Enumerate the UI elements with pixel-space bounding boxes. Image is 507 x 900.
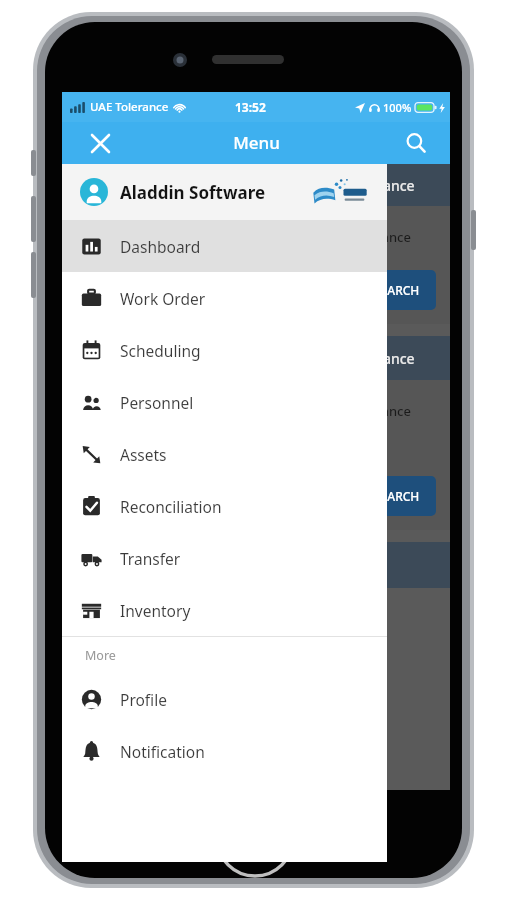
button[interactable]: Profile [62, 673, 387, 725]
staticText: Notification [120, 741, 205, 762]
button[interactable]: Notification [62, 725, 387, 777]
staticText: Balance [362, 176, 415, 195]
button[interactable]: Search [394, 122, 438, 164]
button[interactable]: SEARCH [358, 476, 436, 516]
staticText: Inventory [120, 600, 191, 621]
staticText: Balance [362, 349, 415, 368]
staticText: Scheduling [120, 340, 201, 361]
button[interactable]: SEARCH [358, 270, 436, 310]
staticText: Balance [362, 402, 411, 420]
staticText: Aladdin Software [120, 181, 266, 204]
staticText: Work Order [120, 288, 206, 309]
button[interactable]: Reconciliation [62, 480, 387, 532]
button[interactable]: Inventory [62, 584, 387, 636]
button[interactable]: Dashboard [62, 220, 387, 272]
staticText: Reconciliation [120, 496, 222, 517]
staticText: Personnel [120, 392, 194, 413]
button[interactable]: Close menu [78, 122, 122, 164]
staticText: Assets [120, 444, 167, 465]
staticText: Profile [120, 689, 167, 710]
staticText: 100% [383, 100, 412, 115]
button[interactable]: Personnel [62, 376, 387, 428]
button[interactable]: Work Order [62, 272, 387, 324]
staticText: 13:52 [235, 99, 266, 115]
staticText: Balance [362, 228, 411, 246]
button[interactable]: Assets [62, 428, 387, 480]
staticText: SEARCH [374, 488, 420, 504]
staticText: UAE Tolerance [90, 99, 169, 115]
button[interactable]: Transfer [62, 532, 387, 584]
staticText: Transfer [120, 548, 181, 569]
staticText: SEARCH [374, 282, 420, 298]
button[interactable]: Scheduling [62, 324, 387, 376]
staticText: Menu [233, 131, 280, 154]
staticText: More [85, 647, 116, 664]
staticText: Dashboard [120, 236, 201, 257]
